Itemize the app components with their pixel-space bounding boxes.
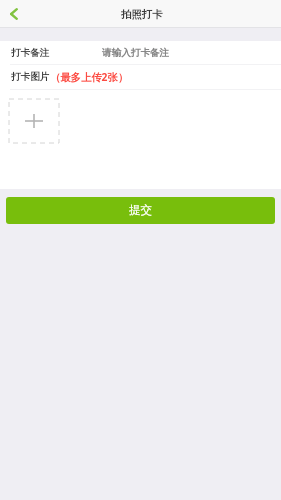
staticText: 拍照打卡 (121, 8, 163, 21)
staticText: （最多上传2张） (50, 70, 128, 84)
button[interactable]: Back (0, 0, 28, 28)
staticText: 打卡图片 (11, 71, 50, 83)
button[interactable]: 提交 (6, 197, 275, 224)
button[interactable]: Add photo (9, 99, 59, 143)
staticText: 请输入打卡备注 (102, 47, 170, 59)
button[interactable]: 打卡备注 (0, 41, 281, 64)
staticText: 提交 (129, 203, 152, 217)
staticText: 打卡备注 (11, 47, 50, 59)
